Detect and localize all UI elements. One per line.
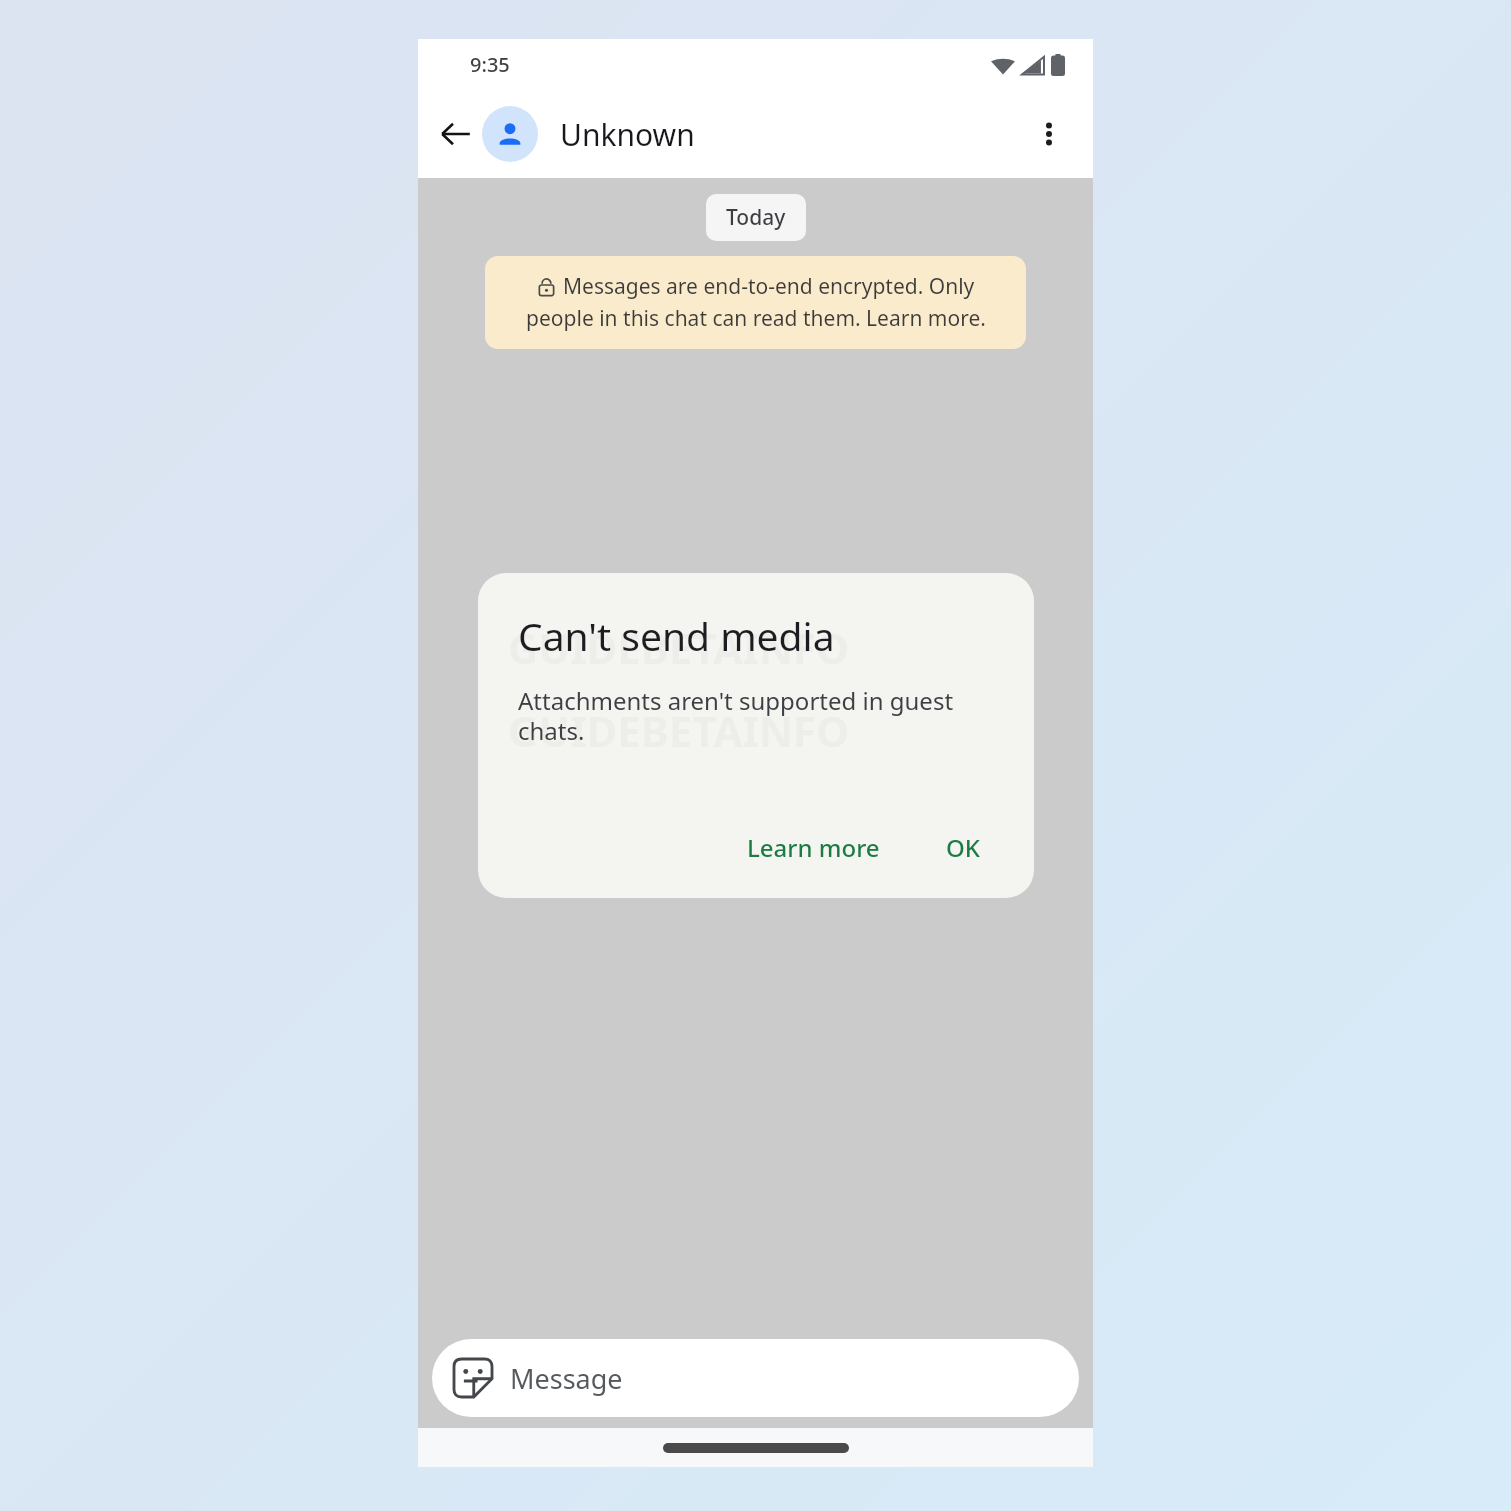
button[interactable]: Message bbox=[432, 1339, 1079, 1417]
button[interactable]: Today bbox=[706, 194, 806, 241]
staticText: OK bbox=[946, 831, 980, 864]
button[interactable] bbox=[482, 106, 538, 162]
button[interactable]: Back bbox=[432, 110, 480, 158]
staticText: 9:35 bbox=[470, 51, 510, 78]
button[interactable]: Messages are end-to-end encrypted. Only bbox=[485, 256, 1026, 349]
staticText: Learn more bbox=[747, 831, 880, 864]
staticText: GUIDEBETAINFO bbox=[508, 619, 850, 676]
staticText: people in this chat can read them. Learn… bbox=[526, 304, 986, 333]
staticText: Attachments aren't supported in guest ch… bbox=[518, 684, 994, 747]
button[interactable]: More options bbox=[1025, 110, 1073, 158]
staticText: Messages are end-to-end encrypted. Only bbox=[563, 272, 975, 301]
staticText: Today bbox=[726, 203, 786, 232]
staticText: Message bbox=[510, 1360, 623, 1397]
button[interactable]: Learn more bbox=[733, 821, 894, 874]
button[interactable]: Unknown bbox=[560, 114, 695, 155]
staticText: Can't send media bbox=[518, 609, 835, 662]
staticText: GUIDEBETAINFO bbox=[508, 702, 850, 759]
button[interactable]: OK bbox=[932, 821, 994, 874]
